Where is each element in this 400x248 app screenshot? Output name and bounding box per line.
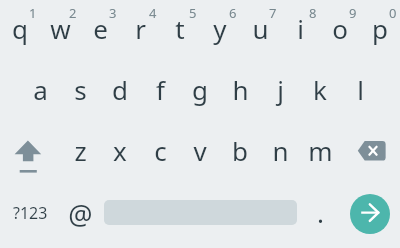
staticText: 2 — [69, 4, 77, 22]
staticText: e — [93, 11, 108, 46]
button[interactable]: . — [300, 184, 340, 246]
button[interactable]: t — [160, 0, 200, 62]
staticText: k — [313, 72, 327, 107]
staticText: n — [272, 133, 289, 168]
button[interactable]: i — [280, 0, 320, 62]
staticText: . — [317, 195, 324, 230]
staticText: j — [277, 72, 284, 107]
staticText: c — [154, 133, 167, 168]
button[interactable]: s — [60, 61, 100, 123]
staticText: @ — [68, 196, 93, 233]
staticText: r — [135, 11, 146, 46]
staticText: ?123 — [13, 202, 48, 224]
staticText: 6 — [229, 4, 237, 22]
staticText: h — [232, 72, 249, 107]
button[interactable]: Send — [350, 194, 390, 234]
staticText: m — [308, 133, 333, 168]
button[interactable]: j — [260, 61, 300, 123]
staticText: g — [192, 72, 208, 107]
button[interactable]: n — [260, 122, 300, 184]
button[interactable]: c — [140, 122, 180, 184]
button[interactable]: z — [60, 122, 100, 184]
button[interactable]: q — [0, 0, 40, 62]
staticText: 8 — [309, 4, 317, 22]
button[interactable]: x — [100, 122, 140, 184]
staticText: d — [112, 72, 128, 107]
staticText: 3 — [109, 4, 117, 22]
staticText: f — [156, 72, 165, 107]
staticText: t — [175, 11, 185, 46]
button[interactable]: e — [80, 0, 120, 62]
button[interactable]: d — [100, 61, 140, 123]
button[interactable]: l — [340, 61, 380, 123]
button[interactable]: g — [180, 61, 220, 123]
staticText: 9 — [349, 4, 357, 22]
staticText: x — [113, 133, 127, 168]
staticText: o — [332, 11, 348, 46]
staticText: 1 — [29, 4, 37, 22]
staticText: s — [74, 72, 87, 107]
button[interactable]: k — [300, 61, 340, 123]
staticText: u — [252, 11, 269, 46]
staticText: 4 — [149, 4, 157, 22]
button[interactable]: a — [20, 61, 60, 123]
staticText: q — [12, 11, 28, 46]
button[interactable]: @ — [60, 184, 100, 246]
button[interactable]: f — [140, 61, 180, 123]
button[interactable]: ?123 — [0, 184, 60, 246]
staticText: p — [372, 11, 388, 46]
staticText: l — [357, 72, 364, 107]
button[interactable]: u — [240, 0, 280, 62]
button[interactable]: h — [220, 61, 260, 123]
staticText: z — [74, 133, 87, 168]
button[interactable]: p — [360, 0, 400, 62]
staticText: v — [193, 133, 207, 168]
staticText: w — [50, 11, 71, 46]
staticText: i — [297, 11, 304, 46]
button[interactable]: w — [40, 0, 80, 62]
button[interactable]: Backspace — [340, 122, 400, 184]
button[interactable]: r — [120, 0, 160, 62]
staticText: 7 — [269, 4, 277, 22]
button[interactable]: m — [300, 122, 340, 184]
staticText: y — [213, 11, 227, 46]
staticText: a — [33, 72, 48, 107]
button[interactable]: o — [320, 0, 360, 62]
staticText: 5 — [189, 4, 197, 22]
button[interactable]: y — [200, 0, 240, 62]
staticText: b — [232, 133, 248, 168]
button[interactable]: Shift — [0, 122, 60, 184]
button[interactable]: v — [180, 122, 220, 184]
staticText: 0 — [389, 4, 397, 22]
button[interactable]: b — [220, 122, 260, 184]
